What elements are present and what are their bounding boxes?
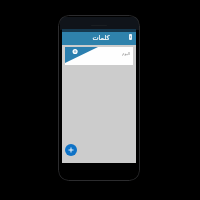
button[interactable]: اليوم: [65, 47, 133, 65]
button[interactable]: Add: [65, 144, 77, 156]
staticText: كلمات: [92, 34, 110, 42]
button[interactable]: كلمات: [62, 32, 136, 45]
staticText: اليوم: [122, 51, 131, 56]
button[interactable]: Device: [127, 33, 133, 41]
